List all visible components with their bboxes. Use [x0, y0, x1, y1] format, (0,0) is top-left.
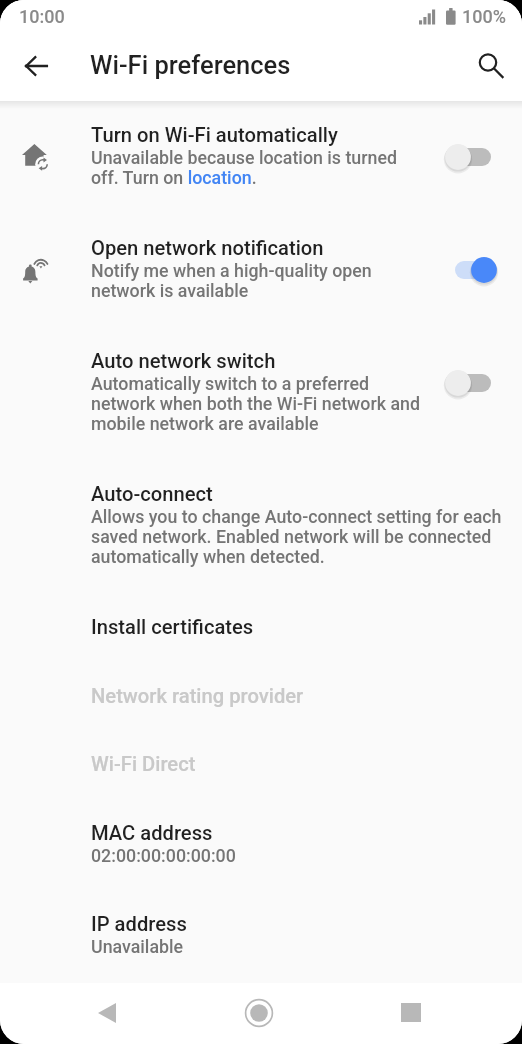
staticText: Notify me when a high-quality open netwo…	[91, 260, 425, 301]
staticText: Auto-connect	[91, 482, 213, 506]
staticText: Auto network switch	[91, 349, 276, 373]
button[interactable]: Wi-Fi Direct	[0, 730, 522, 799]
button[interactable]: Network rating provider	[0, 662, 522, 731]
staticText: MAC address	[91, 821, 213, 845]
staticText: Network rating provider	[91, 684, 304, 708]
button[interactable]: Back	[73, 983, 141, 1044]
staticText: 100%	[462, 6, 506, 27]
staticText: Install certificates	[91, 615, 254, 639]
staticText: 10:00	[19, 6, 65, 27]
button[interactable]: Switch off	[445, 140, 501, 174]
staticText: Open network notification	[91, 236, 324, 260]
staticText: 02:00:00:00:00:00	[91, 845, 236, 866]
button[interactable]: Open network notification	[0, 214, 522, 326]
staticText: IP address	[91, 912, 187, 936]
button[interactable]: Auto-connect	[0, 460, 522, 592]
button[interactable]: Recent apps	[377, 983, 445, 1044]
button[interactable]: Auto network switch	[0, 327, 522, 459]
button[interactable]: Install certificates	[0, 593, 522, 662]
button[interactable]: MAC address	[0, 799, 522, 891]
button[interactable]: Search	[467, 42, 515, 90]
button[interactable]: Switch off	[445, 366, 501, 400]
staticText: Unavailable because location is turned o…	[91, 147, 425, 188]
button[interactable]: Home	[225, 983, 293, 1044]
button[interactable]: Turn on Wi-Fi automatically	[0, 101, 522, 213]
staticText: Automatically switch to a preferred netw…	[91, 373, 425, 434]
button[interactable]: Switch on	[445, 253, 501, 287]
staticText: Turn on Wi-Fi automatically	[91, 123, 338, 147]
button[interactable]: Navigate up	[12, 42, 60, 90]
staticText: Unavailable	[91, 936, 184, 957]
staticText: Allows you to change Auto-connect settin…	[91, 506, 503, 567]
staticText: Wi-Fi Direct	[91, 752, 196, 776]
button[interactable]: IP address	[0, 890, 522, 982]
staticText: Wi-Fi preferences	[90, 50, 291, 80]
